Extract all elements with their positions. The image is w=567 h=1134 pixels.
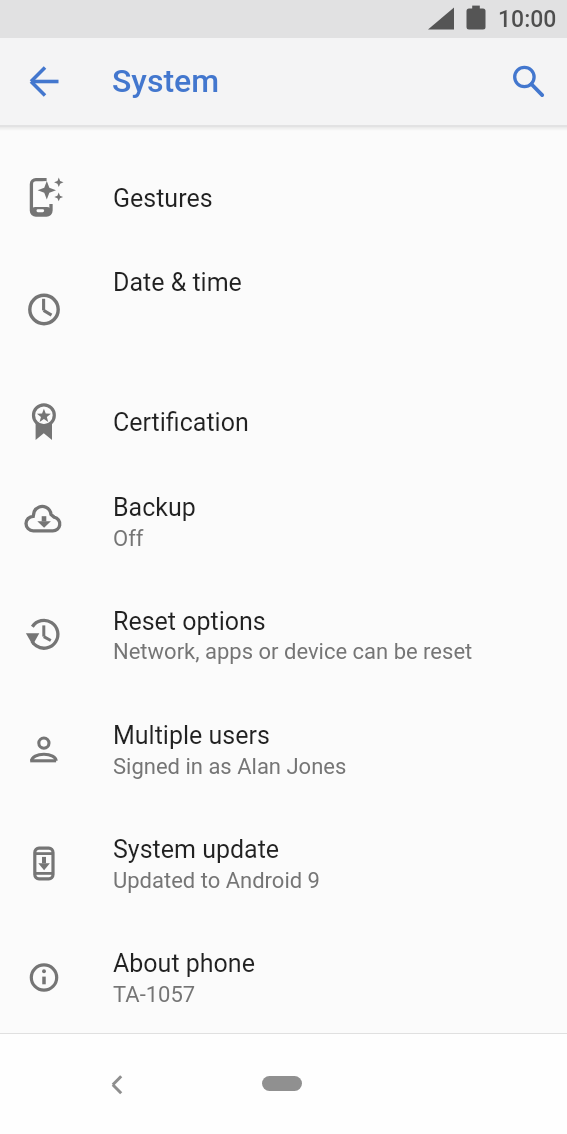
- staticText: Gestures: [113, 184, 213, 213]
- button[interactable]: [505, 58, 549, 102]
- staticText: About phone: [113, 949, 255, 978]
- button[interactable]: Certification: [0, 366, 567, 466]
- staticText: Certification: [113, 408, 249, 437]
- button[interactable]: [262, 1076, 302, 1091]
- staticText: Reset options: [113, 607, 266, 636]
- staticText: Signed in as Alan Jones: [113, 754, 347, 780]
- staticText: Network, apps or device can be reset: [113, 639, 473, 665]
- staticText: Backup: [113, 493, 196, 522]
- button[interactable]: [98, 1066, 136, 1104]
- button[interactable]: Multiple users: [0, 693, 567, 806]
- button[interactable]: Gestures: [0, 140, 567, 253]
- button[interactable]: System update: [0, 806, 567, 920]
- button[interactable]: Reset options: [0, 579, 567, 693]
- staticText: 10:00: [498, 6, 557, 33]
- button[interactable]: [24, 60, 66, 102]
- staticText: Updated to Android 9: [113, 868, 320, 894]
- staticText: TA-1057: [113, 982, 196, 1008]
- staticText: System: [112, 62, 220, 100]
- button[interactable]: Backup: [0, 466, 567, 579]
- staticText: Date & time: [113, 268, 242, 297]
- button[interactable]: About phone: [0, 920, 567, 1033]
- staticText: System update: [113, 835, 280, 864]
- staticText: Multiple users: [113, 721, 270, 750]
- staticText: Off: [113, 526, 144, 552]
- button[interactable]: Date & time: [0, 253, 567, 366]
